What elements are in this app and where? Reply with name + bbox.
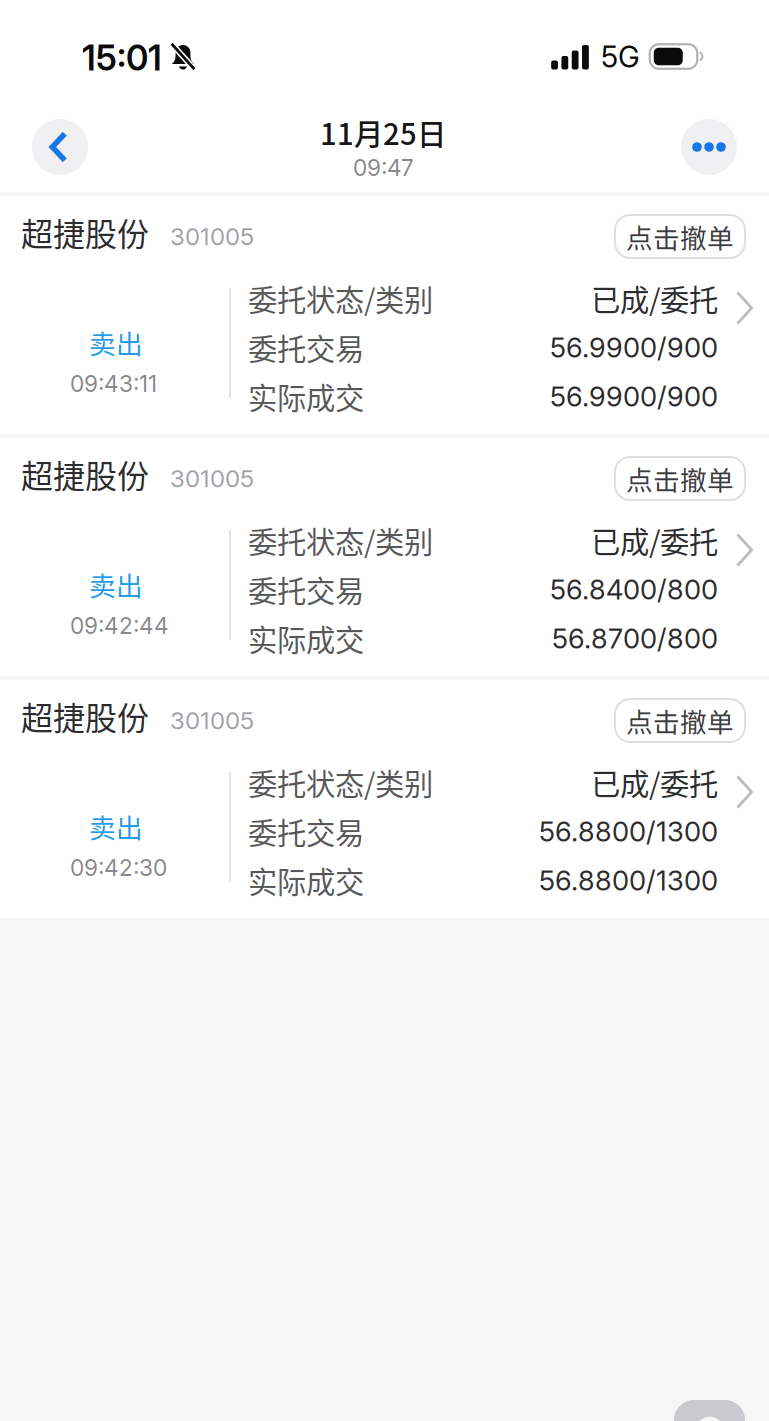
- staticText: 超捷股份: [21, 209, 149, 255]
- staticText: 超捷股份: [21, 451, 149, 497]
- staticText: 已成/委托: [591, 761, 718, 803]
- staticText: 已成/委托: [591, 519, 718, 561]
- staticText: 实际成交: [248, 375, 364, 417]
- staticText: 委托状态/类别: [248, 761, 433, 803]
- staticText: 委托状态/类别: [248, 519, 433, 561]
- staticText: 卖出: [89, 565, 143, 604]
- staticText: 56.8800/1300: [539, 815, 718, 848]
- staticText: 09:42:44: [70, 612, 169, 639]
- button[interactable]: 点击撤单: [615, 699, 745, 742]
- staticText: 委托交易: [248, 810, 364, 852]
- staticText: 09:43:11: [70, 370, 157, 397]
- staticText: 56.8800/1300: [539, 864, 718, 897]
- staticText: 5G: [601, 39, 640, 74]
- staticText: 实际成交: [248, 617, 364, 659]
- staticText: 卖出: [89, 807, 143, 846]
- staticText: 56.9900/900: [550, 331, 718, 364]
- staticText: 09:47: [353, 154, 414, 181]
- staticText: 301005: [170, 222, 254, 251]
- button[interactable]: 超捷股份: [0, 438, 769, 676]
- button[interactable]: Back: [32, 119, 88, 175]
- staticText: 点击撤单: [626, 459, 734, 498]
- staticText: 点击撤单: [626, 217, 734, 256]
- staticText: 56.9900/900: [550, 380, 718, 413]
- staticText: 点击撤单: [626, 701, 734, 740]
- staticText: 56.8700/800: [552, 622, 718, 655]
- staticText: 已成/委托: [591, 277, 718, 319]
- staticText: 301005: [170, 464, 254, 493]
- staticText: 超捷股份: [21, 693, 149, 739]
- staticText: 11月25日: [320, 111, 446, 153]
- staticText: 实际成交: [248, 859, 364, 901]
- staticText: 09:42:30: [70, 854, 167, 881]
- staticText: 委托状态/类别: [248, 277, 433, 319]
- button[interactable]: 点击撤单: [615, 457, 745, 500]
- button[interactable]: 超捷股份: [0, 680, 769, 918]
- button[interactable]: 点击撤单: [615, 215, 745, 258]
- button[interactable]: 超捷股份: [0, 196, 769, 434]
- button[interactable]: Quick action: [674, 1400, 745, 1421]
- button[interactable]: More options: [681, 119, 737, 175]
- staticText: 委托交易: [248, 326, 364, 368]
- staticText: 56.8400/800: [550, 573, 718, 606]
- staticText: 卖出: [89, 323, 143, 362]
- staticText: 15:01: [82, 37, 162, 79]
- staticText: 委托交易: [248, 568, 364, 610]
- staticText: 301005: [170, 706, 254, 735]
